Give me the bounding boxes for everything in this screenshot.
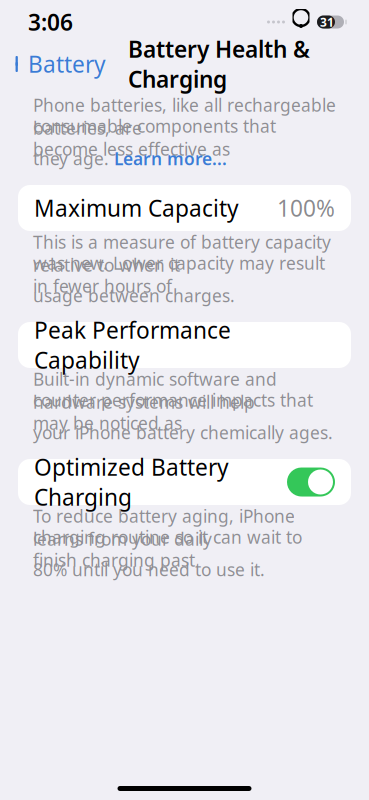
- staticText: charging routine so it can wait to finis…: [33, 525, 302, 571]
- staticText: Optimized Battery Charging: [34, 452, 229, 512]
- staticText: was new. Lower capacity may result in fe…: [33, 251, 325, 297]
- staticText: Learn more...: [114, 147, 227, 170]
- button[interactable]: Maximum Capacity: [18, 185, 351, 231]
- staticText: Battery Health & Charging: [128, 34, 310, 94]
- staticText: Maximum Capacity: [34, 193, 239, 223]
- button[interactable]: Learn more...: [114, 147, 227, 170]
- staticText: 100%: [277, 193, 335, 223]
- staticText: Phone batteries, like all rechargeable b…: [33, 93, 336, 139]
- staticText: consumable components that become less e…: [33, 114, 276, 160]
- button[interactable]: Optimized Battery Charging: [18, 459, 351, 505]
- staticText: Built-in dynamic software and hardware s…: [33, 367, 277, 413]
- staticText: 3:06: [28, 7, 73, 37]
- staticText: they age.: [33, 147, 114, 170]
- button[interactable]: Battery: [0, 44, 112, 84]
- staticText: your iPhone battery chemically ages.: [33, 421, 333, 444]
- staticText: counter performance impacts that may be …: [33, 388, 313, 434]
- staticText: usage between charges.: [33, 284, 235, 307]
- staticText: This is a measure of battery capacity re…: [33, 230, 331, 276]
- staticText: 80% until you need to use it.: [33, 558, 265, 581]
- staticText: To reduce battery aging, iPhone learns f…: [33, 504, 295, 550]
- button[interactable]: Peak Performance Capability: [18, 322, 351, 368]
- staticText: Peak Performance Capability: [34, 315, 231, 375]
- staticText: Battery: [28, 49, 106, 79]
- staticText: 31: [320, 14, 334, 30]
